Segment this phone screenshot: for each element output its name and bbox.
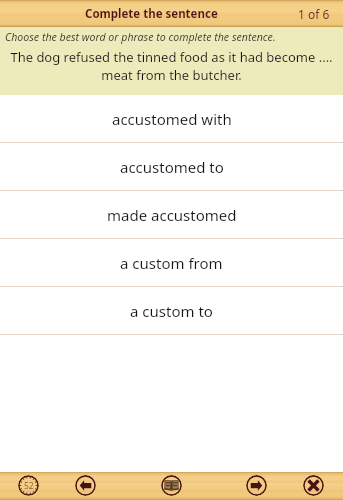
button[interactable]: Next question: [246, 475, 267, 496]
button[interactable]: made accustomed: [0, 191, 343, 238]
staticText: 1 of 6: [298, 6, 330, 22]
staticText: The dog refused the tinned food as it ha…: [10, 48, 333, 84]
staticText: accustomed with: [112, 109, 232, 129]
button[interactable]: Close quiz: [303, 475, 324, 496]
staticText: Complete the sentence: [85, 6, 218, 22]
staticText: Choose the best word or phrase to comple…: [5, 30, 276, 44]
staticText: a custom to: [130, 301, 213, 321]
button[interactable]: accustomed to: [0, 143, 343, 190]
button[interactable]: Timer, 52 seconds left: [18, 475, 39, 496]
staticText: made accustomed: [107, 205, 237, 225]
staticText: accustomed to: [120, 157, 224, 177]
button[interactable]: accustomed with: [0, 95, 343, 142]
button[interactable]: Previous question: [75, 475, 96, 496]
button[interactable]: a custom from: [0, 239, 343, 286]
button[interactable]: Dictionary: [161, 475, 182, 496]
staticText: 52: [24, 480, 34, 492]
staticText: a custom from: [120, 253, 223, 273]
button[interactable]: a custom to: [0, 287, 343, 334]
